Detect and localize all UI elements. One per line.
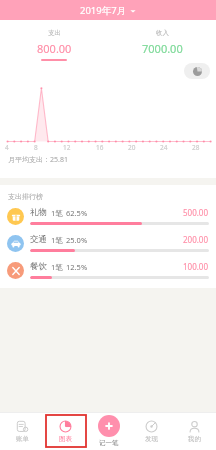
staticText: 800.00 — [37, 41, 72, 56]
staticText: 支出排行榜 — [8, 192, 43, 201]
staticText: 图表 — [59, 435, 72, 443]
staticText: 月平均支出：25.81 — [8, 155, 68, 165]
staticText: 12.5% — [66, 262, 88, 272]
staticText: 1笔 — [51, 208, 63, 218]
staticText: 8 — [34, 143, 38, 152]
staticText: 餐饮 — [30, 261, 47, 272]
staticText: 账单 — [16, 435, 29, 443]
staticText: 100.00 — [183, 261, 209, 272]
staticText: 25.0% — [66, 235, 88, 245]
button[interactable]: 账单 — [12, 418, 33, 445]
button[interactable]: 记一笔 — [94, 415, 124, 447]
staticText: 2019年7月 — [80, 4, 127, 17]
staticText: 交通 — [30, 234, 47, 245]
staticText: 支出 — [48, 29, 61, 37]
button[interactable]: 发现 — [141, 418, 162, 445]
staticText: 1笔 — [51, 235, 63, 245]
staticText: 200.00 — [183, 234, 209, 245]
staticText: 收入 — [156, 29, 169, 37]
staticText: 28 — [192, 143, 200, 152]
button[interactable]: 餐饮 — [0, 261, 216, 279]
staticText: 500.00 — [183, 207, 209, 218]
staticText: 礼物 — [30, 207, 47, 218]
staticText: 16 — [96, 143, 104, 152]
button[interactable]: 图表 — [55, 418, 76, 445]
button[interactable]: 礼物 — [0, 207, 216, 225]
staticText: 我的 — [188, 435, 201, 443]
staticText: 1笔 — [51, 262, 63, 272]
button[interactable]: 2019年7月 — [70, 1, 146, 20]
button[interactable]: Show pie chart — [184, 63, 210, 79]
staticText: 发现 — [145, 435, 158, 443]
staticText: 12 — [63, 143, 71, 152]
staticText: 记一笔 — [99, 439, 119, 447]
staticText: 62.5% — [66, 208, 88, 218]
button[interactable]: 我的 — [184, 418, 205, 445]
staticText: 20 — [128, 143, 136, 152]
staticText: 24 — [160, 143, 168, 152]
staticText: 7000.00 — [142, 41, 183, 56]
button[interactable]: 交通 — [0, 234, 216, 252]
staticText: 4 — [5, 143, 9, 152]
